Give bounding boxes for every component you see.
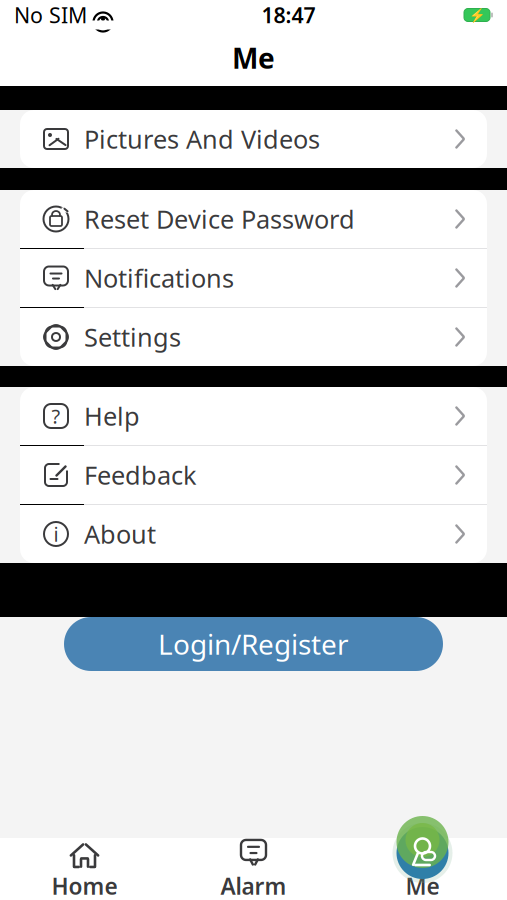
staticText: Me <box>232 39 275 77</box>
staticText: Alarm <box>220 871 286 900</box>
staticText: ⚡ <box>468 7 485 23</box>
button[interactable]: Reset Device Password <box>20 190 487 248</box>
button[interactable]: Me <box>338 838 507 900</box>
staticText: Notifications <box>84 261 234 295</box>
staticText: Login/Register <box>158 625 349 663</box>
staticText: ? <box>51 403 60 429</box>
button[interactable]: i <box>20 505 487 563</box>
button[interactable]: Alarm <box>169 838 338 900</box>
staticText: No SIM <box>14 1 87 29</box>
staticText: 18:47 <box>261 1 315 29</box>
button[interactable]: Pictures And Videos <box>20 110 487 168</box>
button[interactable]: ? <box>20 387 487 445</box>
staticText: Pictures And Videos <box>84 122 320 156</box>
staticText: Help <box>84 399 140 433</box>
staticText: Reset Device Password <box>84 202 355 236</box>
staticText: Me <box>405 871 439 900</box>
staticText: Feedback <box>84 458 197 492</box>
button[interactable]: Me <box>0 30 507 86</box>
staticText: i <box>53 521 58 547</box>
staticText: Settings <box>84 320 181 354</box>
button[interactable]: Me tab <box>392 823 452 883</box>
staticText: Home <box>51 871 117 900</box>
button[interactable]: Login/Register <box>64 617 443 671</box>
button[interactable]: Feedback <box>20 446 487 504</box>
button[interactable]: Home <box>0 838 169 900</box>
button[interactable]: Settings <box>20 308 487 366</box>
button[interactable]: Notifications <box>20 249 487 307</box>
staticText: About <box>84 517 156 551</box>
